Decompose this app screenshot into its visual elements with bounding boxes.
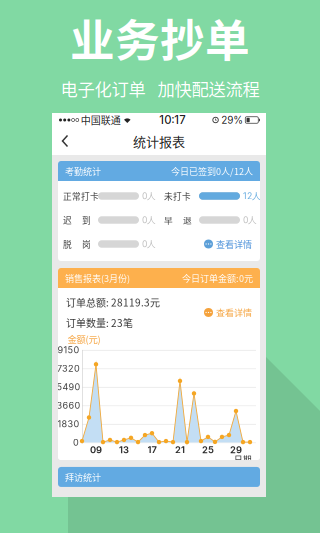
staticText: 拜访统计 (65, 470, 101, 483)
staticText: 13 (119, 444, 129, 456)
staticText: 0人 (243, 214, 257, 225)
staticText: 0人 (142, 190, 156, 201)
button[interactable]: 查看详情 (204, 300, 260, 324)
staticText: 25 (202, 444, 214, 456)
button[interactable]: 查看详情 (204, 232, 260, 256)
staticText: 今日订单金额:0元 (182, 271, 253, 284)
staticText: 3660 (56, 400, 80, 411)
staticText: 17 (147, 444, 156, 456)
staticText: 脱 岗 (63, 238, 91, 250)
staticText: 12人 (243, 190, 261, 201)
staticText: 29% (218, 114, 243, 126)
staticText: 迟 到 (63, 214, 91, 226)
staticText: 10:17 (159, 113, 185, 127)
button[interactable]: Back (52, 127, 78, 155)
staticText: 09 (90, 444, 102, 456)
staticText: 订单总额: 28119.3元 (66, 295, 160, 309)
staticText: 统计报表 (133, 131, 185, 150)
staticText: 今日已签到0人/12人 (171, 164, 253, 177)
staticText: 0人 (142, 214, 156, 225)
staticText: 29 (230, 444, 242, 456)
staticText: 5490 (56, 381, 80, 392)
staticText: 正常打卡 (63, 190, 99, 202)
staticText: 中国联通 (79, 113, 123, 127)
staticText: 考勤统计 (65, 164, 101, 177)
staticText: 0 (73, 437, 79, 448)
staticText: 21 (175, 444, 185, 456)
staticText: 日期 (234, 453, 252, 466)
staticText: 未打卡 (164, 190, 191, 202)
staticText: 查看详情 (216, 306, 252, 319)
staticText: 金额(元) (67, 332, 100, 346)
staticText: 销售报表(3月份) (65, 271, 130, 284)
staticText: 订单数量: 23笔 (66, 315, 133, 330)
staticText: 查看详情 (216, 237, 252, 250)
staticText: 电子化订单 加快配送流程 (60, 76, 259, 101)
staticText: 7320 (57, 363, 80, 374)
staticText: 1830 (57, 418, 79, 429)
staticText: 0人 (142, 238, 156, 249)
staticText: 早 退 (164, 214, 192, 226)
staticText: 9150 (57, 344, 79, 355)
staticText: 业务抄单 (70, 5, 250, 70)
